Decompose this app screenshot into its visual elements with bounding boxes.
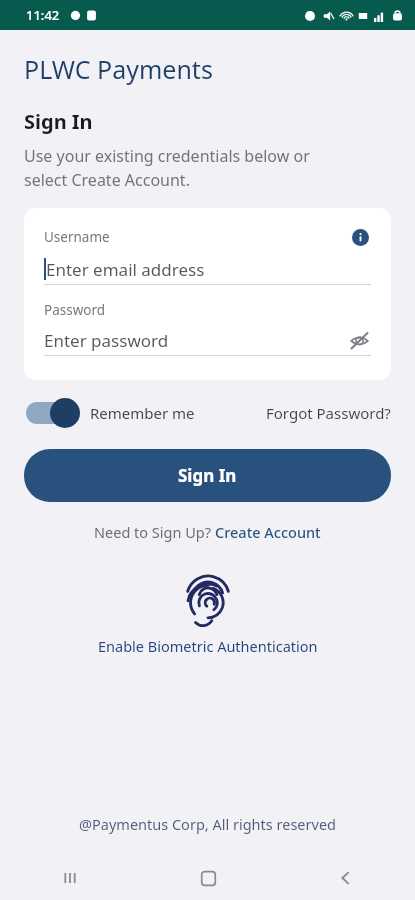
- staticText: Sign In: [24, 108, 93, 135]
- button[interactable]: Create Account: [215, 522, 321, 542]
- staticText: Enable Biometric Authentication: [98, 636, 318, 656]
- staticText: Forgot Password?: [266, 403, 391, 423]
- staticText: Enter email address: [46, 258, 205, 281]
- button[interactable]: Sign In: [24, 449, 391, 502]
- staticText: 11:42: [26, 6, 60, 24]
- button[interactable]: Enter password: [44, 329, 347, 352]
- button[interactable]: Enable Biometric Authentication: [0, 570, 415, 656]
- button[interactable]: Show password: [347, 328, 371, 352]
- staticText: Sign In: [178, 464, 237, 487]
- staticText: Create Account: [215, 522, 321, 542]
- button[interactable]: Home: [139, 856, 277, 900]
- button[interactable]: Back: [277, 856, 415, 900]
- button[interactable]: Enter email address: [44, 254, 371, 284]
- staticText: PLWC Payments: [24, 52, 213, 86]
- staticText: Username: [44, 228, 110, 246]
- button[interactable]: Recent apps: [0, 856, 139, 900]
- button[interactable]: Forgot Password?: [266, 403, 391, 423]
- staticText: @Paymentus Corp, All rights reserved: [0, 814, 415, 834]
- button[interactable]: Username information: [349, 226, 371, 248]
- button[interactable]: Remember me: [24, 398, 195, 428]
- staticText: Use your existing credentials below or s…: [24, 145, 310, 191]
- staticText: Password: [44, 301, 106, 319]
- staticText: Remember me: [90, 403, 195, 423]
- staticText: Need to Sign Up?: [94, 522, 215, 542]
